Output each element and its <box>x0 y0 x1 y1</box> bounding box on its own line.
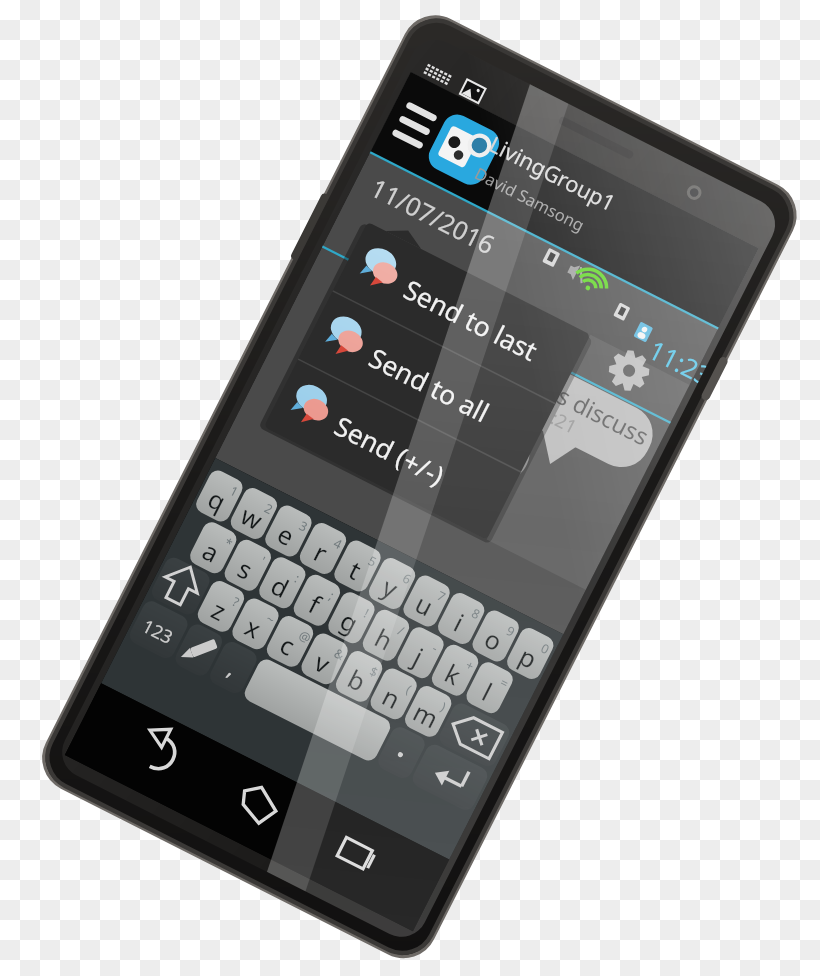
button[interactable]: Smartphone showing messaging app with se… <box>0 0 820 976</box>
